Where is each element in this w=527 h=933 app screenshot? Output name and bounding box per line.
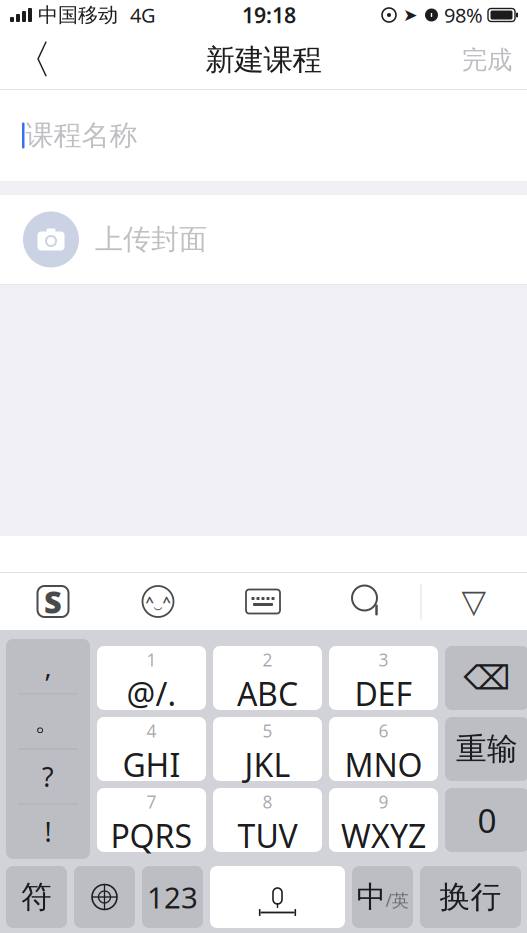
staticText: 完成 [462,44,512,75]
button[interactable]: 搜索 [315,576,420,626]
button[interactable]: 键盘 [210,576,315,626]
button[interactable]: 。 [6,694,90,749]
staticText: ^‿^ [145,592,170,611]
staticText: ⌫ [463,659,510,697]
button[interactable]: 语音输入 空格 [210,866,345,928]
button[interactable]: 8 [213,788,322,852]
staticText: 5 [262,719,272,742]
staticText: JKL [244,743,290,786]
staticText: 6 [378,719,388,742]
staticText: ABC [237,672,298,715]
button[interactable]: 切换键盘 [74,866,135,928]
staticText: 〈 [12,35,52,84]
button[interactable]: 5 [213,717,322,781]
staticText: 9 [378,790,388,813]
staticText: GHI [122,743,180,786]
staticText: ! [44,814,51,849]
button[interactable]: 1 [97,646,206,710]
staticText: ➤ [403,5,418,25]
staticText: S [44,581,62,622]
button[interactable]: 9 [329,788,438,852]
staticText: , [44,649,51,684]
button[interactable]: 表情 [105,576,210,626]
button[interactable]: ! [6,804,90,859]
button[interactable]: 符 [6,866,67,928]
staticText: 课程名称 [25,118,137,153]
button[interactable]: 收起键盘 [421,576,526,626]
staticText: 中 [356,879,385,915]
staticText: 8 [262,790,272,813]
staticText: DEF [354,672,412,715]
staticText: 4G [130,2,156,28]
staticText: 重输 [456,730,518,768]
button[interactable]: 删除 [445,646,527,710]
button[interactable]: 搜狗输入法 [0,576,105,626]
staticText: WXYZ [341,814,426,857]
button[interactable]: 完成 [447,30,527,90]
staticText: 4 [146,719,156,742]
staticText: TUV [237,814,297,857]
staticText: 中国移动 [38,3,118,27]
staticText: ▽ [461,583,486,620]
button[interactable]: 换行 [420,866,521,928]
button[interactable]: 返回 [0,30,64,90]
button[interactable]: , [6,639,90,693]
button[interactable]: 中 [352,866,413,928]
staticText: 1 [146,648,156,671]
staticText: /英 [385,888,408,911]
staticText: 123 [147,877,198,916]
button[interactable]: 0 [445,788,527,852]
button[interactable]: 重输 [445,717,527,781]
staticText: 。 [34,705,61,738]
staticText: MNO [344,743,422,786]
button[interactable]: 7 [97,788,206,852]
button[interactable]: ? [6,749,90,804]
staticText: ? [42,759,54,794]
button[interactable]: 6 [329,717,438,781]
staticText: 98% [444,2,483,28]
staticText: PQRS [110,814,192,857]
staticText: 换行 [439,878,501,916]
staticText: 7 [146,790,156,813]
staticText: 2 [262,648,272,671]
staticText: 0 [477,798,496,842]
staticText: 上传封面 [95,222,207,257]
staticText: 19:18 [242,1,296,29]
button[interactable]: 上传封面 [0,195,527,284]
button[interactable]: 2 [213,646,322,710]
button[interactable]: 123 [142,866,203,928]
staticText: @/. [126,672,176,715]
staticText: 符 [21,878,52,916]
staticText: 3 [378,648,388,671]
staticText: 新建课程 [205,42,321,78]
button[interactable]: 4 [97,717,206,781]
button[interactable]: 3 [329,646,438,710]
